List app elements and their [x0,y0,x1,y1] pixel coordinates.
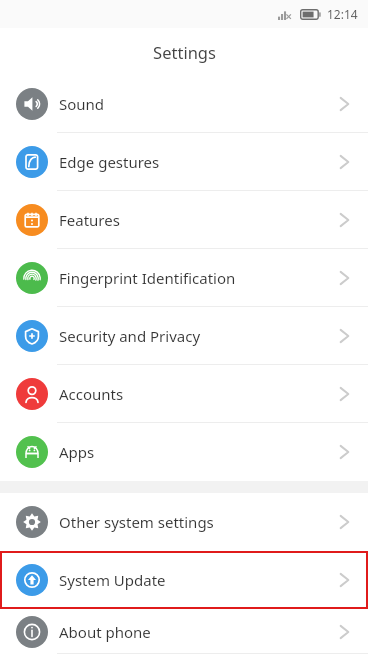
button[interactable]: Features [0,191,368,249]
staticText: Fingerprint Identification [59,268,236,288]
staticText: System Update [59,570,166,590]
staticText: Features [59,210,120,230]
button[interactable]: Accounts [0,365,368,423]
button[interactable]: About phone [0,609,368,654]
button[interactable]: Apps [0,423,368,481]
staticText: Edge gestures [59,152,160,172]
staticText: Sound [59,94,105,114]
staticText: Security and Privacy [59,326,201,346]
staticText: Accounts [59,384,124,404]
button[interactable]: Edge gestures [0,133,368,191]
button[interactable]: Sound [0,75,368,133]
staticText: Settings [153,41,216,63]
staticText: Apps [59,442,95,462]
button[interactable]: Fingerprint Identification [0,249,368,307]
button[interactable]: Other system settings [0,493,368,551]
button[interactable]: Security and Privacy [0,307,368,365]
staticText: Other system settings [59,512,214,532]
staticText: 12:14 [327,6,358,22]
button[interactable]: System Update [0,551,368,609]
staticText: About phone [59,622,151,642]
